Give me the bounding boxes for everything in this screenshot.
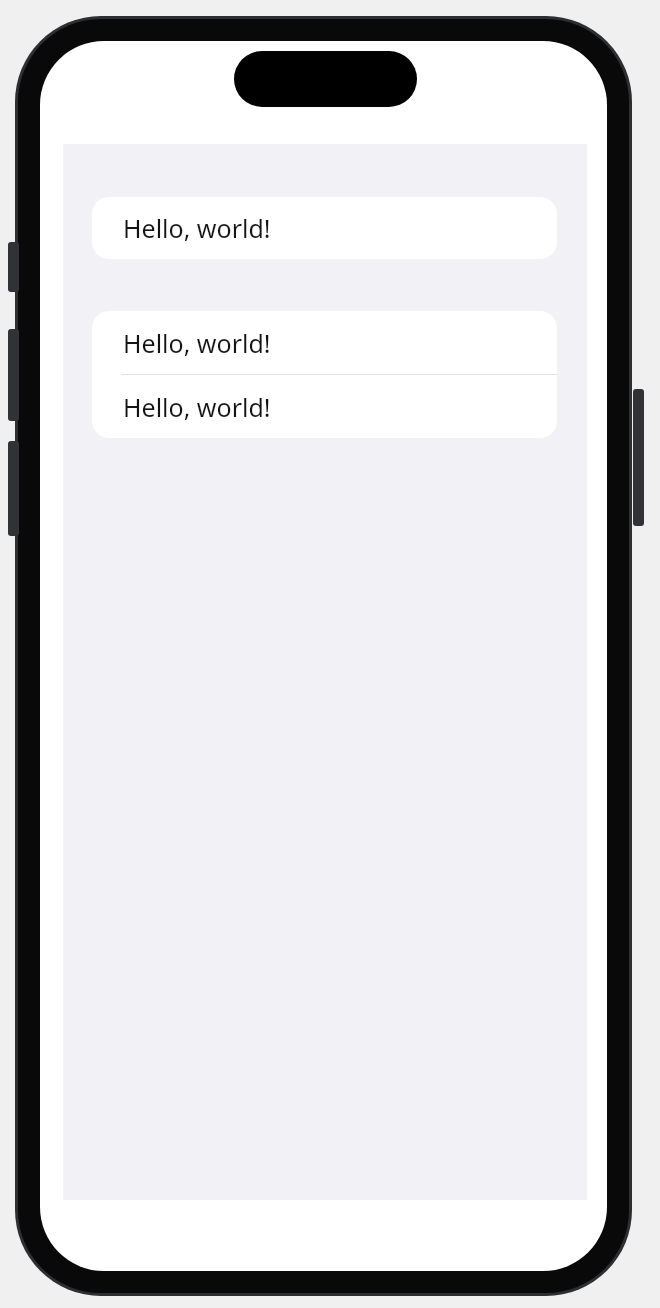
staticText: Hello, world! [123,211,271,245]
button[interactable]: Hello, world! [92,375,557,438]
button[interactable]: Hello, world! [92,197,557,259]
button[interactable]: Hello, world! [92,311,557,374]
staticText: Hello, world! [123,326,271,360]
staticText: Hello, world! [123,390,271,424]
